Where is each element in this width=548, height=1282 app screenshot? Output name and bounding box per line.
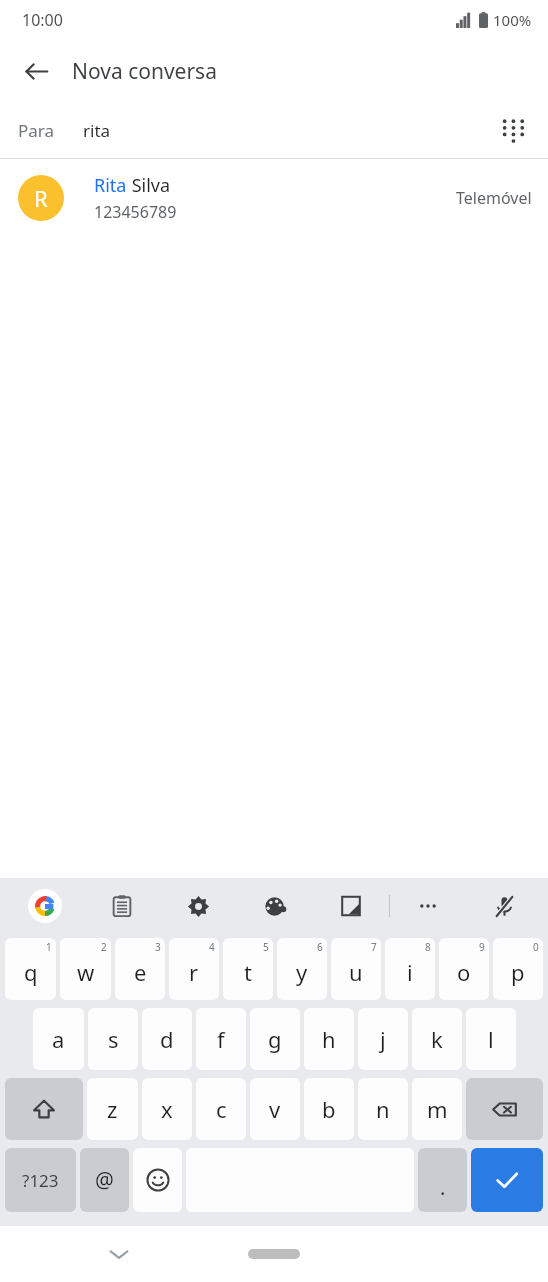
- staticText: t: [244, 957, 252, 987]
- button[interactable]: h: [304, 1008, 354, 1070]
- button[interactable]: Themes: [237, 878, 313, 934]
- button[interactable]: Emoji: [133, 1148, 182, 1212]
- button[interactable]: 6: [277, 938, 327, 1000]
- button[interactable]: 2: [60, 938, 111, 1000]
- button[interactable]: 9: [439, 938, 489, 1000]
- button[interactable]: c: [196, 1078, 246, 1140]
- staticText: 3: [155, 940, 161, 954]
- button[interactable]: @: [80, 1148, 129, 1212]
- button[interactable]: Shift: [5, 1078, 83, 1140]
- button[interactable]: Clipboard: [83, 878, 160, 934]
- button[interactable]: Dialpad: [490, 107, 536, 153]
- staticText: 0: [533, 940, 539, 954]
- staticText: Telemóvel: [456, 187, 532, 209]
- staticText: 1: [46, 940, 52, 954]
- staticText: Silva: [127, 173, 171, 198]
- staticText: g: [268, 1024, 282, 1054]
- staticText: n: [376, 1094, 390, 1124]
- staticText: i: [407, 957, 413, 987]
- staticText: l: [488, 1024, 494, 1054]
- button[interactable]: k: [412, 1008, 462, 1070]
- staticText: 5: [263, 940, 269, 954]
- staticText: o: [457, 957, 471, 987]
- button[interactable]: 8: [385, 938, 435, 1000]
- button[interactable]: l: [466, 1008, 516, 1070]
- button[interactable]: Hide keyboard: [96, 1231, 142, 1277]
- staticText: 8: [425, 940, 431, 954]
- button[interactable]: 5: [223, 938, 273, 1000]
- staticText: Rita: [94, 173, 127, 198]
- button[interactable]: v: [250, 1078, 300, 1140]
- staticText: x: [161, 1094, 173, 1124]
- staticText: 9: [479, 940, 485, 954]
- staticText: d: [160, 1024, 174, 1054]
- staticText: z: [107, 1094, 118, 1124]
- staticText: r: [189, 957, 199, 987]
- button[interactable]: m: [412, 1078, 462, 1140]
- staticText: 6: [317, 940, 323, 954]
- button[interactable]: d: [142, 1008, 192, 1070]
- staticText: s: [108, 1024, 119, 1054]
- staticText: v: [269, 1094, 281, 1124]
- button[interactable]: 1: [5, 938, 56, 1000]
- button[interactable]: f: [196, 1008, 246, 1070]
- staticText: e: [134, 957, 147, 987]
- button[interactable]: n: [358, 1078, 408, 1140]
- staticText: Para: [18, 119, 55, 142]
- staticText: m: [427, 1094, 448, 1124]
- staticText: f: [217, 1024, 225, 1054]
- button[interactable]: 7: [331, 938, 381, 1000]
- staticText: 123456789: [94, 201, 177, 223]
- button[interactable]: Done: [471, 1148, 543, 1212]
- staticText: j: [380, 1024, 386, 1054]
- staticText: k: [431, 1024, 443, 1054]
- button[interactable]: 3: [115, 938, 165, 1000]
- button[interactable]: g: [250, 1008, 300, 1070]
- button[interactable]: x: [142, 1078, 192, 1140]
- button[interactable]: Backspace: [466, 1078, 543, 1140]
- staticText: p: [511, 957, 525, 987]
- staticText: 4: [209, 940, 215, 954]
- button[interactable]: Home: [248, 1249, 300, 1259]
- staticText: @: [95, 1166, 114, 1195]
- button[interactable]: 0: [493, 938, 543, 1000]
- button[interactable]: ?123: [5, 1148, 76, 1212]
- button[interactable]: 4: [169, 938, 219, 1000]
- staticText: 100%: [493, 10, 532, 30]
- button[interactable]: .: [418, 1148, 467, 1212]
- button[interactable]: s: [88, 1008, 138, 1070]
- staticText: 2: [101, 940, 107, 954]
- staticText: h: [322, 1024, 336, 1054]
- button[interactable]: b: [304, 1078, 354, 1140]
- button[interactable]: z: [87, 1078, 138, 1140]
- staticText: b: [322, 1094, 336, 1124]
- staticText: ?123: [22, 1169, 59, 1192]
- button[interactable]: j: [358, 1008, 408, 1070]
- staticText: a: [52, 1024, 65, 1054]
- staticText: c: [216, 1094, 227, 1124]
- staticText: Nova conversa: [72, 57, 217, 86]
- staticText: 7: [371, 940, 377, 954]
- button[interactable]: Back: [10, 45, 62, 97]
- staticText: 10:00: [22, 9, 63, 31]
- button[interactable]: Google Assistant: [6, 878, 83, 934]
- button[interactable]: Floating keyboard: [313, 878, 389, 934]
- staticText: .: [440, 1174, 446, 1201]
- staticText: rita: [83, 119, 111, 142]
- staticText: R: [34, 183, 48, 213]
- button[interactable]: R: [0, 159, 548, 237]
- staticText: w: [77, 957, 95, 987]
- staticText: u: [349, 957, 363, 987]
- button[interactable]: Settings: [160, 878, 237, 934]
- staticText: y: [296, 957, 308, 987]
- button[interactable]: More options: [390, 878, 466, 934]
- button[interactable]: Voice input off: [466, 878, 542, 934]
- staticText: q: [24, 957, 38, 987]
- button[interactable]: a: [33, 1008, 84, 1070]
